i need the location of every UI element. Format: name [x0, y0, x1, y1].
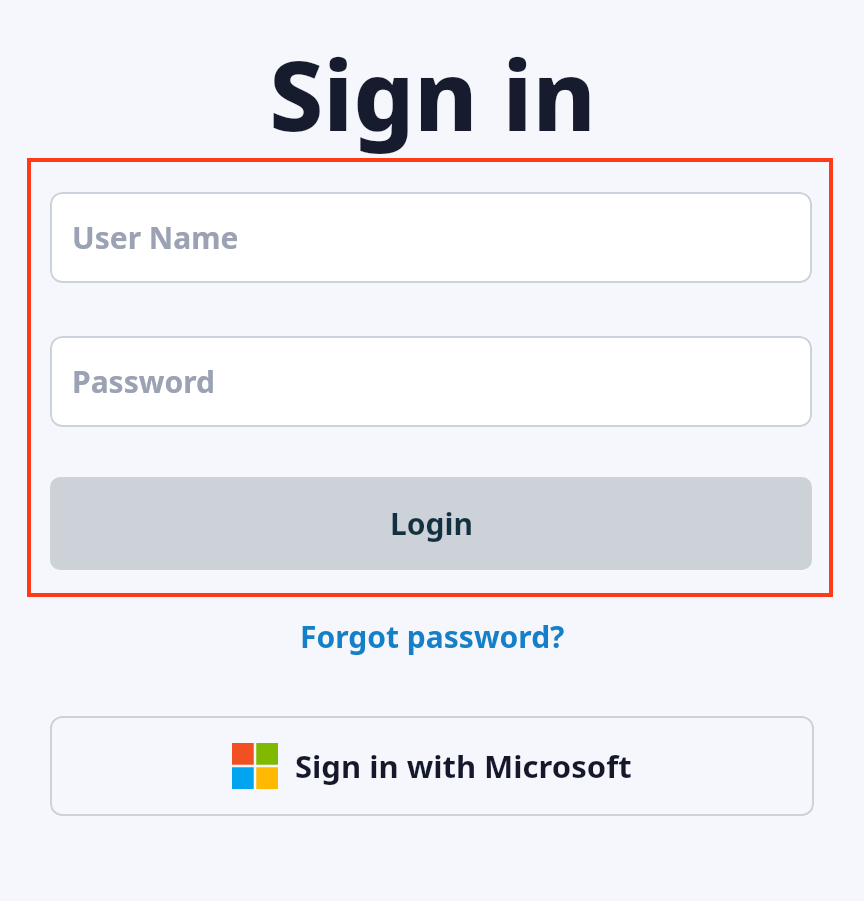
button[interactable]: Password — [50, 336, 812, 427]
staticText: Sign in — [269, 28, 596, 158]
staticText: Password — [72, 361, 215, 402]
staticText: Login — [390, 503, 473, 544]
staticText: Forgot password? — [300, 616, 565, 657]
staticText: Sign in with Microsoft — [295, 745, 632, 787]
button[interactable]: Microsoft logo — [50, 716, 814, 816]
button[interactable]: Login — [50, 477, 812, 570]
button[interactable]: Forgot password? — [292, 610, 573, 663]
other: Microsoft logo — [232, 743, 278, 789]
staticText: User Name — [72, 217, 239, 258]
button[interactable]: User Name — [50, 192, 812, 283]
